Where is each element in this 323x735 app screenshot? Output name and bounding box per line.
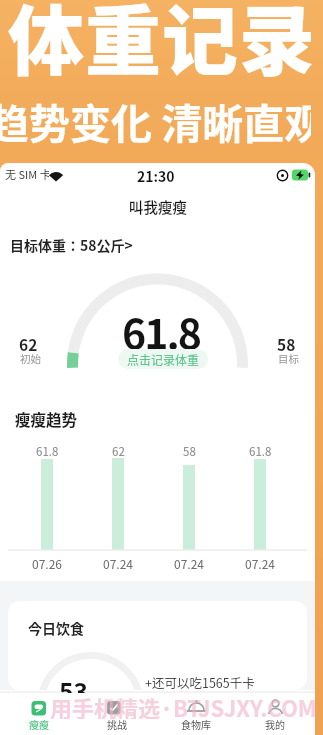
button[interactable]: 点击记录体重 (118, 349, 208, 369)
staticText: 无 SIM 卡 (5, 166, 49, 182)
staticText: 53 (59, 673, 88, 708)
staticText: 体重记录 (8, 0, 316, 77)
staticText: 07.24 (174, 555, 204, 571)
staticText: 叫我瘦瘦 (129, 196, 187, 217)
staticText: 61.8 (36, 443, 59, 459)
staticText: 目标体重：58公斤> (10, 235, 133, 255)
staticText: 今日饮食 (28, 618, 84, 638)
staticText: 58 (183, 443, 196, 459)
staticText: 21:30 (137, 166, 175, 186)
staticText: 挑战 (107, 717, 127, 731)
staticText: 62 (112, 443, 125, 459)
staticText: 瘦瘦趋势 (15, 408, 78, 430)
staticText: 07.26 (32, 555, 62, 571)
button[interactable] (0, 691, 78, 735)
staticText: 07.24 (245, 555, 275, 571)
staticText: 瘦瘦 (29, 717, 49, 731)
staticText: 用手机精选·BTJSJXY.COM (50, 691, 316, 719)
button[interactable] (236, 691, 314, 735)
staticText: 61.8 (249, 443, 272, 459)
staticText: +还可以吃1565千卡 (145, 673, 255, 691)
staticText: 趋势变化 清晰直观 (0, 91, 311, 149)
staticText: 初始 (20, 351, 41, 366)
button[interactable]: 目标体重：58公斤> (10, 225, 230, 265)
staticText: 食物库 (181, 717, 211, 731)
button[interactable] (78, 691, 156, 735)
staticText: 62 (19, 333, 38, 353)
button[interactable] (157, 691, 235, 735)
staticText: 61.8 (122, 301, 200, 357)
staticText: 07.24 (103, 555, 133, 571)
staticText: 点击记录体重 (127, 351, 200, 368)
staticText: 我的 (265, 717, 285, 731)
staticText: 目标 (278, 351, 299, 366)
staticText: 58 (277, 333, 296, 353)
